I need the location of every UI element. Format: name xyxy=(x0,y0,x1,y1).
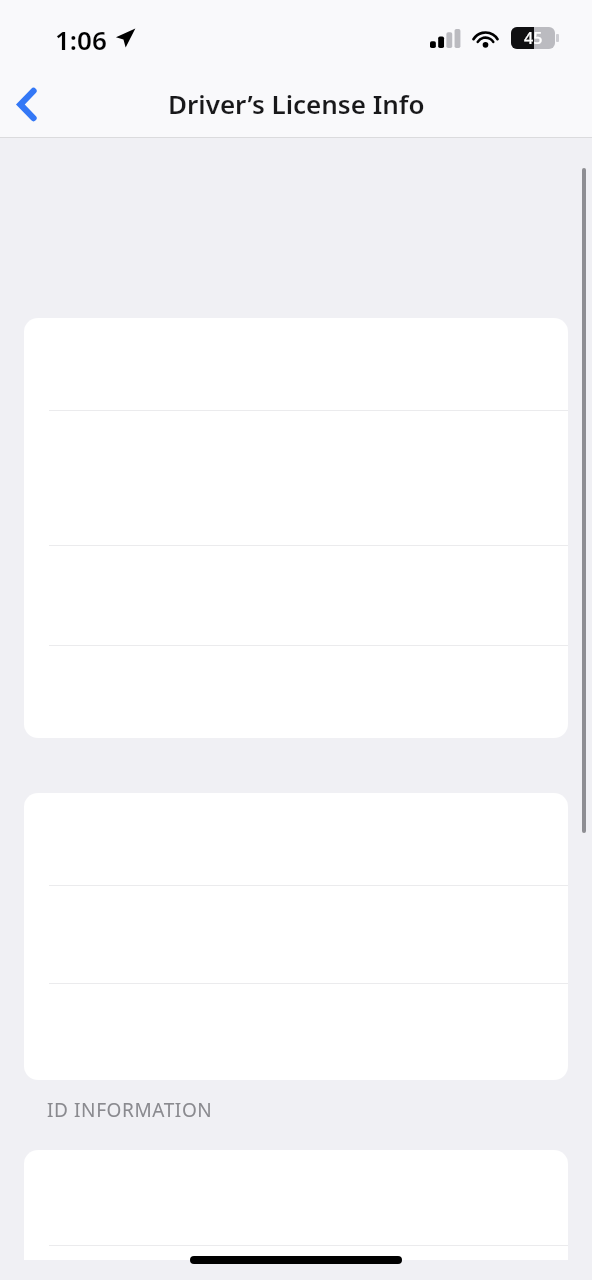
staticText: 45 xyxy=(524,27,543,49)
staticText: Driver’s License Info xyxy=(168,86,425,121)
button[interactable] xyxy=(24,1150,568,1260)
staticText: 1:06 xyxy=(55,22,107,57)
staticText: ID INFORMATION xyxy=(47,1097,213,1123)
button[interactable]: Back xyxy=(0,78,52,130)
